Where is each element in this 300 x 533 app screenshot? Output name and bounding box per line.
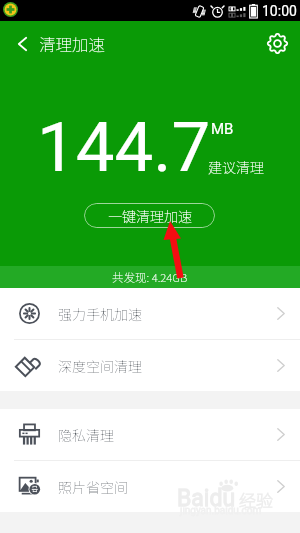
staticText: 经验 (239, 487, 273, 512)
button[interactable]: 隐私清理 (0, 409, 300, 460)
staticText: jingyan.baidu.com (180, 505, 262, 517)
staticText: Baidu (177, 485, 236, 512)
button[interactable]: 深度空间清理 (0, 340, 300, 391)
staticText: 深度空间清理 (58, 356, 142, 376)
staticText: 10:00 (262, 3, 297, 19)
button[interactable]: Back (0, 21, 38, 66)
staticText: 144.7 (37, 107, 211, 188)
staticText: 一键清理加速 (108, 206, 192, 226)
button[interactable]: Settings (254, 21, 300, 66)
button[interactable]: 照片省空间 (0, 461, 300, 512)
staticText: 共发现: 4.24GB (112, 269, 188, 286)
staticText: 清理加速 (39, 32, 105, 56)
staticText: 强力手机加速 (58, 304, 142, 324)
staticText: 隐私清理 (58, 425, 114, 445)
staticText: 照片省空间 (58, 477, 128, 497)
button[interactable]: 强力手机加速 (0, 288, 300, 339)
button[interactable]: 一键清理加速 (84, 203, 215, 228)
staticText: 建议清理 (208, 157, 264, 177)
staticText: MB (211, 120, 234, 138)
